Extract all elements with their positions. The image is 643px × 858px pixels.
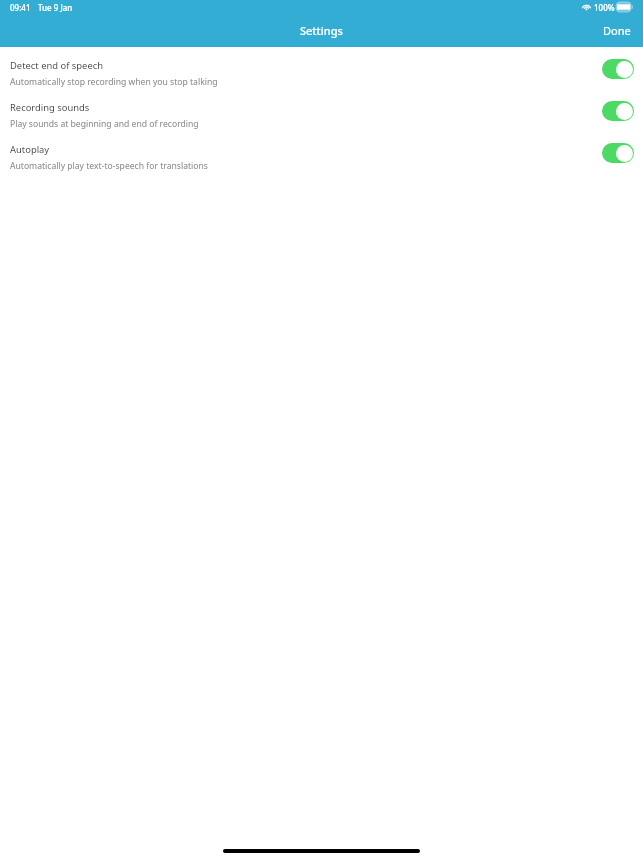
staticText: 09:41 xyxy=(10,2,31,13)
staticText: Autoplay xyxy=(10,143,50,156)
staticText: Play sounds at beginning and end of reco… xyxy=(10,118,199,130)
other: Wi-Fi connected xyxy=(582,3,591,10)
button[interactable]: Autoplay xyxy=(0,131,643,173)
staticText: Automatically play text-to-speech for tr… xyxy=(10,160,208,172)
staticText: Settings xyxy=(300,23,343,38)
staticText: Recording sounds xyxy=(10,101,90,114)
button[interactable]: Detect end of speech, on xyxy=(602,59,634,79)
staticText: Automatically stop recording when you st… xyxy=(10,76,218,88)
button[interactable]: Recording sounds xyxy=(0,89,643,131)
staticText: 100% xyxy=(594,2,615,13)
button[interactable]: Detect end of speech xyxy=(0,47,643,89)
staticText: Detect end of speech xyxy=(10,59,104,72)
staticText: Tue 9 Jan xyxy=(38,2,73,13)
button[interactable]: Autoplay, on xyxy=(602,143,634,163)
other: Battery full xyxy=(616,2,633,12)
button[interactable]: Recording sounds, on xyxy=(602,101,634,121)
button[interactable]: Done xyxy=(591,19,643,42)
staticText: Done xyxy=(603,23,631,38)
